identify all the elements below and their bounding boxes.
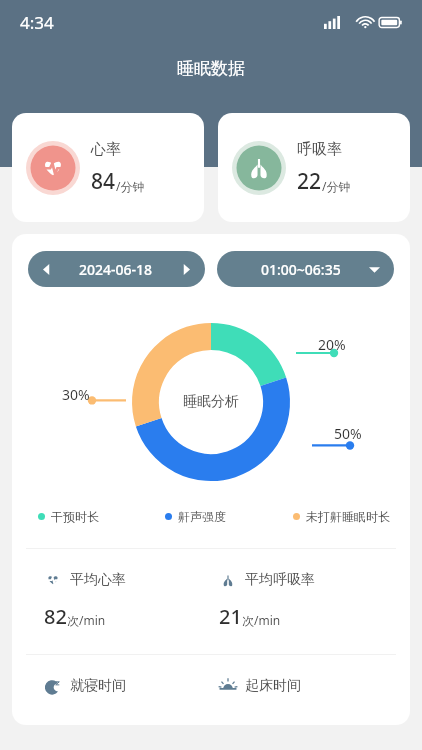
other: Next day	[181, 264, 192, 275]
staticText: 平均心率	[70, 571, 126, 589]
staticText: 次/min	[242, 612, 281, 628]
staticText: 30%	[62, 385, 90, 404]
staticText: 84	[91, 167, 116, 196]
other: Select time range	[369, 264, 380, 275]
staticText: /分钟	[322, 178, 351, 194]
staticText: 82	[44, 603, 67, 630]
staticText: 呼吸率	[297, 140, 342, 159]
staticText: 2024-06-18	[79, 260, 153, 279]
staticText: 20%	[318, 335, 346, 354]
staticText: 21	[219, 603, 242, 630]
staticText: 心率	[91, 140, 121, 159]
staticText: 干预时长	[51, 509, 99, 524]
staticText: 平均呼吸率	[245, 571, 315, 589]
button[interactable]: 呼吸率	[218, 113, 410, 222]
button[interactable]: 01:00~06:35	[217, 251, 394, 287]
staticText: 未打鼾睡眠时长	[306, 509, 390, 524]
staticText: 50%	[334, 424, 362, 443]
staticText: 睡眠分析	[183, 393, 239, 411]
staticText: /分钟	[116, 178, 145, 194]
other: Previous day	[41, 264, 52, 275]
staticText: 鼾声强度	[178, 509, 226, 524]
button[interactable]: 心率	[12, 113, 204, 222]
staticText: 睡眠数据	[177, 58, 245, 79]
staticText: 22	[297, 167, 322, 196]
staticText: 就寝时间	[70, 677, 126, 695]
staticText: 次/min	[67, 612, 106, 628]
button[interactable]: Previous day	[28, 251, 205, 287]
staticText: 01:00~06:35	[261, 260, 341, 279]
staticText: 起床时间	[245, 677, 301, 695]
staticText: 4:34	[20, 11, 54, 34]
